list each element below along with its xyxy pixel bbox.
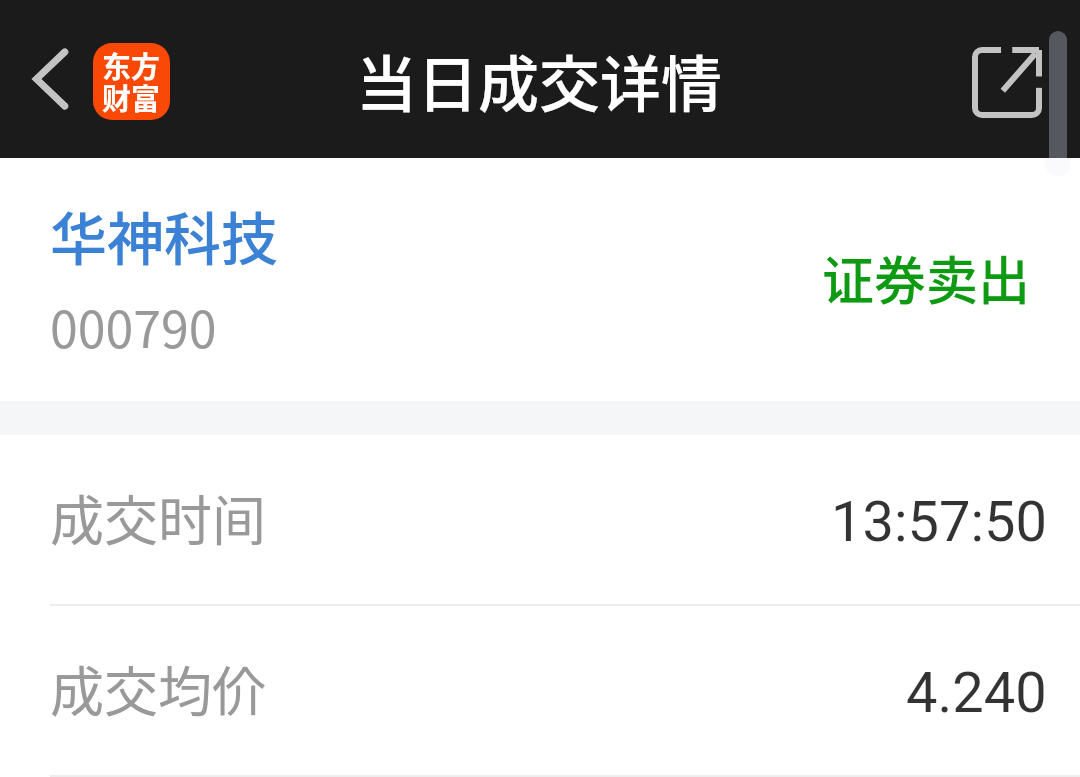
staticText: 成交均价 <box>50 649 266 727</box>
staticText: 华神科技 <box>50 194 278 277</box>
button[interactable]: 华神科技 <box>0 158 1080 401</box>
button[interactable]: 成交均价 <box>0 606 1080 775</box>
staticText: 财富 <box>102 76 161 118</box>
button[interactable]: Back <box>3 33 95 125</box>
button[interactable]: East Money <box>93 43 170 120</box>
staticText: 13:57:50 <box>831 489 1047 555</box>
button[interactable]: 成交时间 <box>0 435 1080 604</box>
staticText: 证券卖出 <box>822 240 1031 315</box>
staticText: 当日成交详情 <box>356 36 723 124</box>
staticText: 成交时间 <box>50 478 266 556</box>
button[interactable]: Share <box>962 37 1052 128</box>
staticText: 4.240 <box>906 660 1047 726</box>
staticText: 000790 <box>50 290 217 362</box>
staticText: 东方 <box>102 44 161 86</box>
